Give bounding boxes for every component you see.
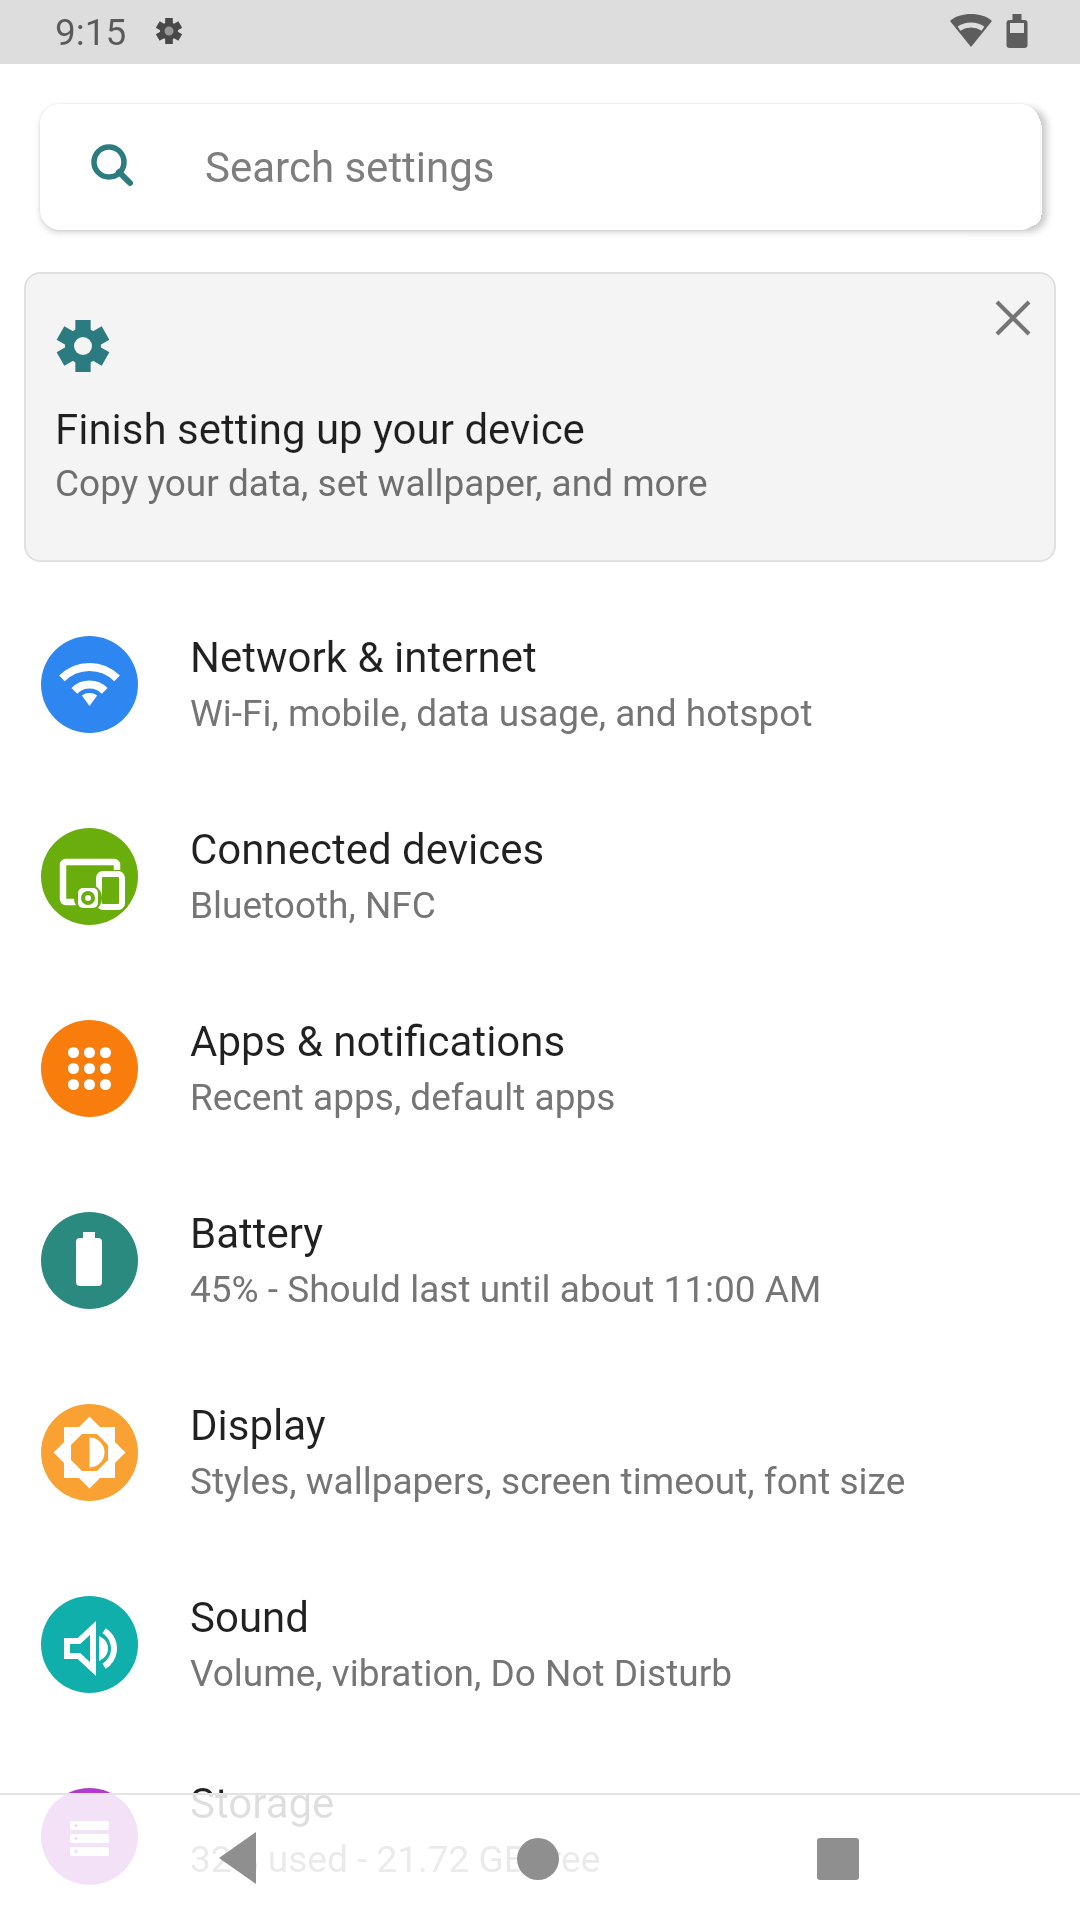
staticText: Apps & notifications	[190, 1017, 566, 1066]
button[interactable]: Storage	[0, 1740, 1080, 1920]
staticText: 45% - Should last until about 11:00 AM	[190, 1268, 822, 1311]
staticText: Connected devices	[190, 825, 545, 874]
button[interactable]	[219, 1832, 257, 1884]
button[interactable]: Sound	[0, 1548, 1080, 1740]
button[interactable]: Display	[0, 1356, 1080, 1548]
staticText: 9:15	[55, 11, 127, 54]
staticText: Styles, wallpapers, screen timeout, font…	[190, 1460, 906, 1503]
button[interactable]: Finish setting up your device	[24, 272, 1056, 562]
button[interactable]: Apps & notifications	[0, 972, 1080, 1164]
button[interactable]	[815, 1836, 861, 1882]
staticText: Sound	[190, 1593, 309, 1642]
staticText: Copy your data, set wallpaper, and more	[55, 462, 708, 505]
button[interactable]: Connected devices	[0, 780, 1080, 972]
staticText: Recent apps, default apps	[190, 1076, 616, 1119]
button[interactable]: Battery	[0, 1164, 1080, 1356]
staticText: Storage	[190, 1779, 335, 1828]
staticText: Finish setting up your device	[55, 405, 585, 454]
staticText: 32% used - 21.72 GB free	[190, 1838, 601, 1881]
button[interactable]	[995, 300, 1031, 336]
button[interactable]: Network & internet	[0, 588, 1080, 780]
staticText: Wi-Fi, mobile, data usage, and hotspot	[190, 692, 813, 735]
staticText: Volume, vibration, Do Not Disturb	[190, 1652, 733, 1695]
staticText: Bluetooth, NFC	[190, 884, 436, 927]
button[interactable]	[513, 1834, 563, 1884]
staticText: Display	[190, 1401, 326, 1450]
staticText: Search settings	[205, 143, 495, 192]
button[interactable]: Search settings	[40, 104, 1040, 230]
staticText: Battery	[190, 1209, 324, 1258]
staticText: Network & internet	[190, 633, 537, 682]
